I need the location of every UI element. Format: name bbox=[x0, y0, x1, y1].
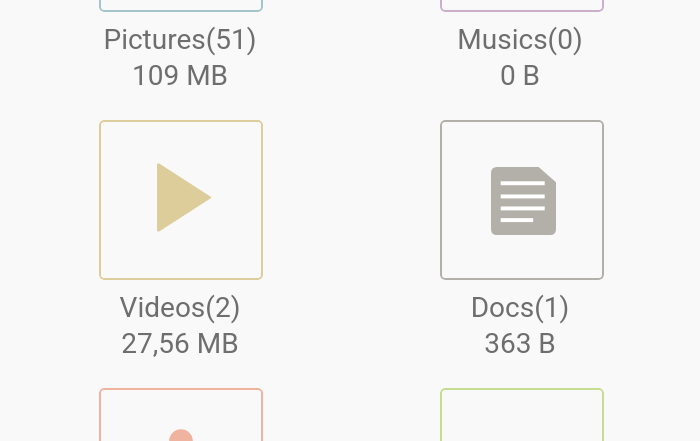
staticText: 109 MB bbox=[10, 59, 350, 92]
button[interactable]: Docs bbox=[440, 120, 604, 280]
staticText: 27,56 MB bbox=[10, 327, 350, 360]
staticText: Pictures(51) bbox=[10, 23, 350, 56]
button[interactable]: Apks bbox=[440, 388, 604, 441]
button[interactable]: Pictures bbox=[99, 0, 263, 12]
staticText: 363 B bbox=[350, 327, 690, 360]
staticText: Videos(2) bbox=[10, 291, 350, 324]
staticText: Docs(1) bbox=[350, 291, 690, 324]
button[interactable]: Downloads bbox=[99, 388, 263, 441]
button[interactable]: Musics bbox=[440, 0, 604, 12]
staticText: Musics(0) bbox=[350, 23, 690, 56]
staticText: 0 B bbox=[350, 59, 690, 92]
button[interactable]: Videos bbox=[99, 120, 263, 280]
